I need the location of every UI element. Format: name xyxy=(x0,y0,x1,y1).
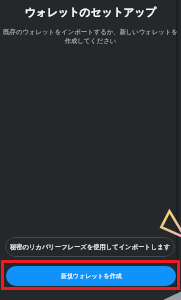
staticText: 新規ウォレットを作成 xyxy=(61,272,122,280)
staticText: 秘密のリカバリーフレーズを使用してインポートします xyxy=(10,243,171,251)
staticText: 既存のウォレットをインポートするか、新しいウォレットを xyxy=(0,28,181,36)
staticText: 作成してください xyxy=(0,37,181,45)
staticText: ウォレットのセットアップ xyxy=(0,6,181,19)
button[interactable]: 新規ウォレットを作成 xyxy=(6,266,176,286)
button[interactable]: 秘密のリカバリーフレーズを使用してインポートします xyxy=(5,237,175,257)
